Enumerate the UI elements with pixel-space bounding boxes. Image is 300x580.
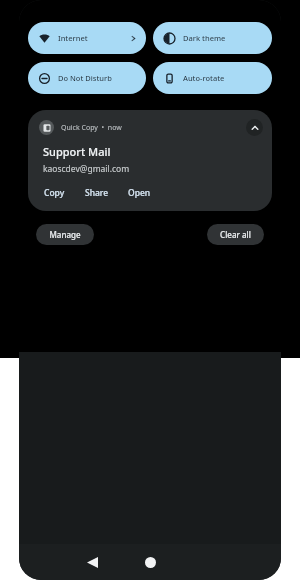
staticText: Internet (58, 33, 88, 43)
button[interactable]: Back (77, 547, 107, 577)
staticText: Manage (49, 229, 81, 240)
staticText: Share (85, 187, 109, 199)
button[interactable]: Quick Copy • now (28, 110, 272, 211)
button[interactable]: Collapse (246, 119, 263, 136)
button[interactable]: Clear all (207, 224, 264, 245)
staticText: kaoscdev@gmail.com (43, 163, 130, 175)
button[interactable]: Internet (28, 22, 146, 54)
staticText: Support Mail (43, 144, 111, 159)
staticText: Dark theme (183, 33, 226, 43)
staticText: Open (128, 187, 151, 199)
button[interactable]: Copy (43, 186, 66, 200)
button[interactable]: Do Not Disturb (28, 62, 146, 94)
staticText: Auto-rotate (183, 73, 225, 83)
staticText: Do Not Disturb (58, 73, 112, 83)
staticText: Quick Copy • now (61, 123, 122, 133)
button[interactable]: Share (84, 186, 110, 200)
button[interactable]: Dark theme (153, 22, 272, 54)
button[interactable]: Home (135, 547, 165, 577)
button[interactable]: Manage (36, 224, 94, 245)
button[interactable]: Auto-rotate (153, 62, 272, 94)
button[interactable]: Open (127, 186, 152, 200)
staticText: Clear all (220, 229, 251, 240)
staticText: Copy (44, 187, 65, 199)
